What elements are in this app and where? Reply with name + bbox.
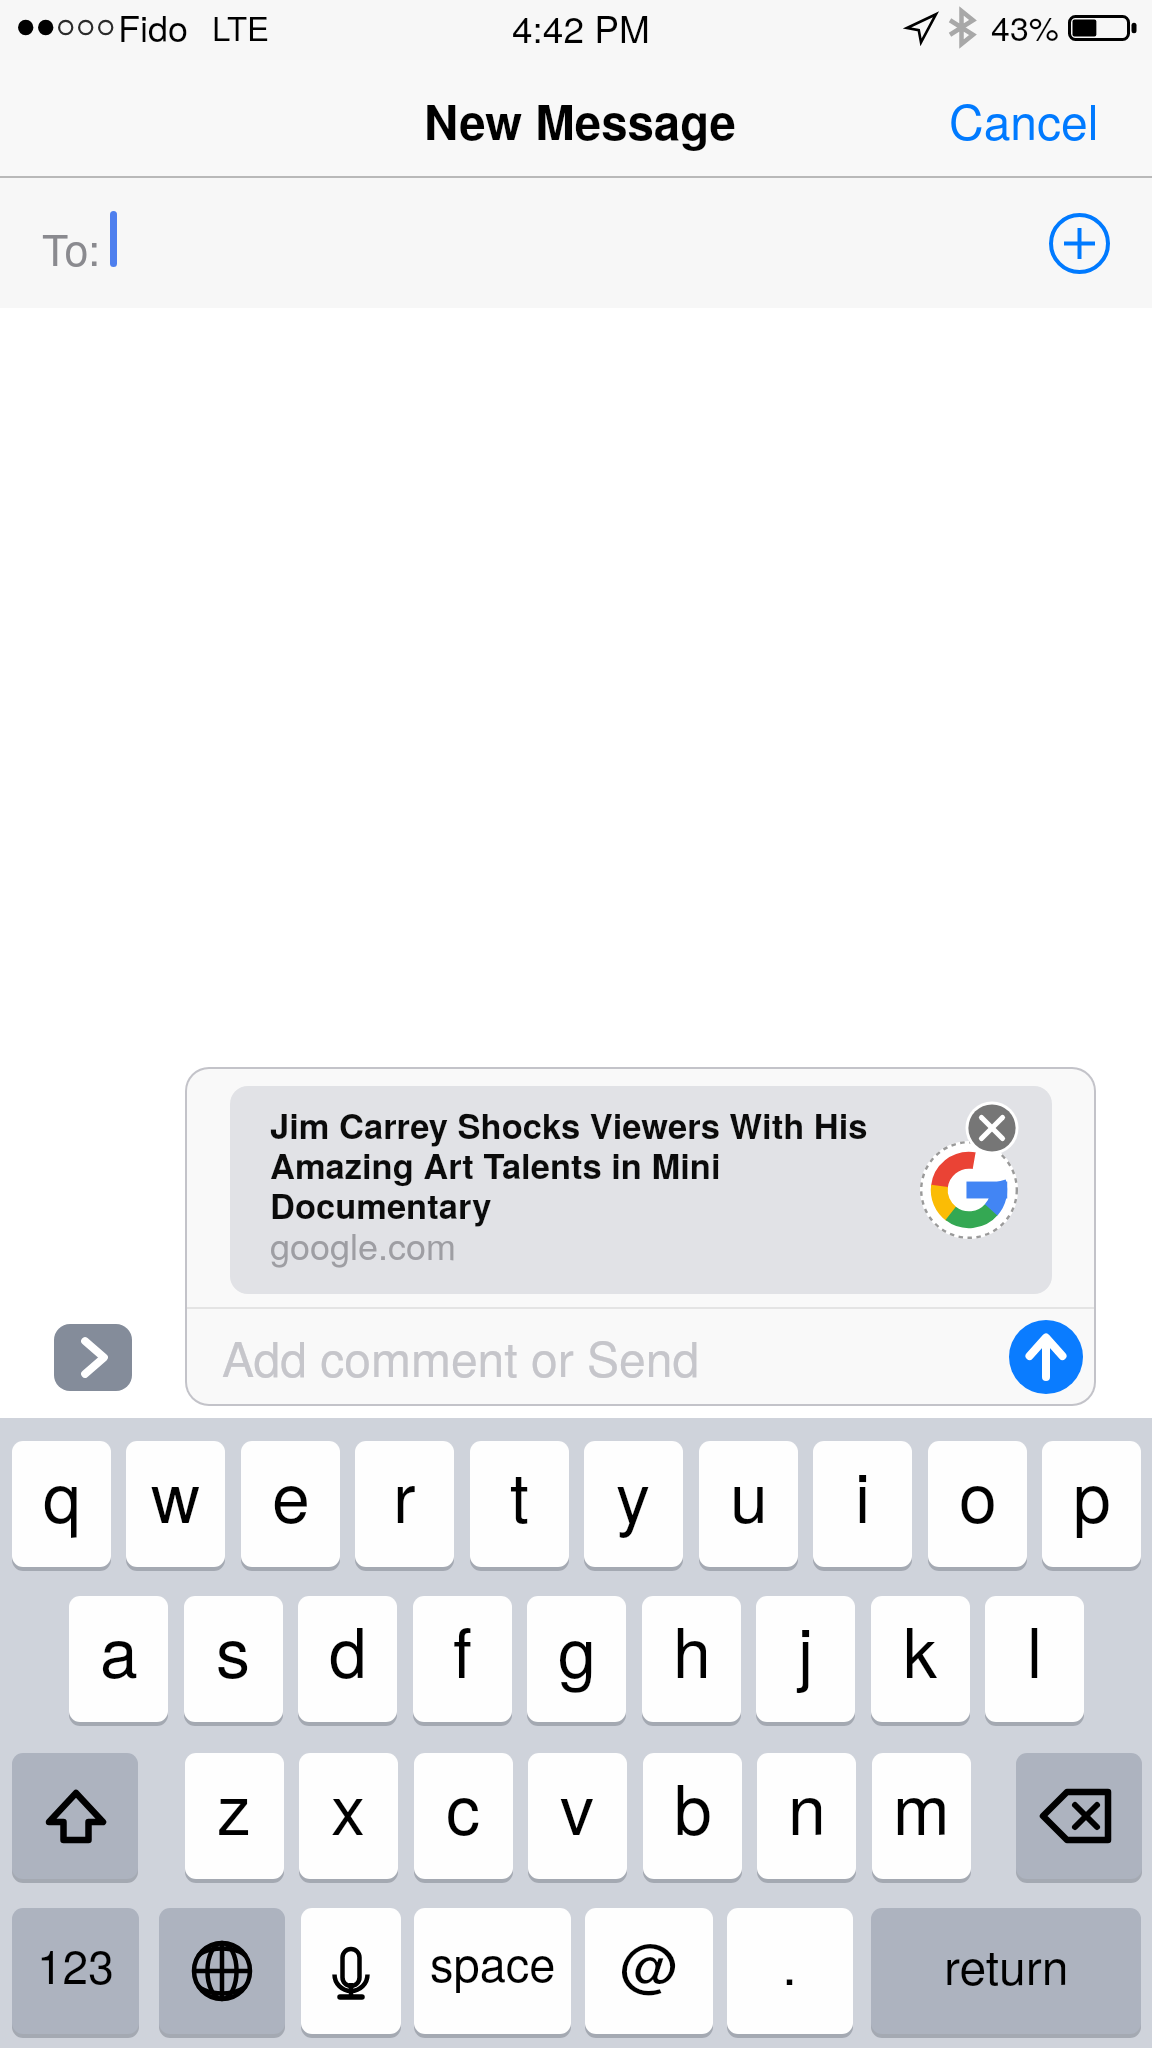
button[interactable]: t [470,1441,569,1567]
button[interactable]: Dictate [301,1908,401,2034]
staticText: Cancel [949,85,1099,154]
staticText: google.com [270,1219,457,1271]
staticText: @ [620,1920,679,2003]
button[interactable]: c [414,1753,513,1879]
staticText: j [798,1600,814,1697]
button[interactable]: y [584,1441,683,1567]
button[interactable]: n [757,1753,856,1879]
button[interactable]: h [642,1596,741,1722]
staticText: . [782,1923,798,2000]
staticText: To: [42,217,101,279]
staticText: Fido [118,1,189,53]
button[interactable]: e [241,1441,340,1567]
staticText: New Message [424,87,736,155]
staticText: 43% [991,2,1060,51]
staticText: f [453,1600,472,1697]
button[interactable]: u [699,1441,798,1567]
staticText: r [393,1445,416,1542]
button[interactable]: k [871,1596,970,1722]
button[interactable]: i [813,1441,912,1567]
button[interactable]: Remove attachment [960,1096,1024,1160]
staticText: Jim Carrey Shocks Viewers With His [270,1100,868,1149]
staticText: x [331,1757,366,1854]
button[interactable]: Backspace [1016,1753,1142,1879]
staticText: Add comment or Send [222,1322,700,1391]
staticText: q [43,1445,81,1542]
staticText: d [329,1600,367,1697]
button[interactable]: r [355,1441,454,1567]
staticText: m [893,1757,950,1854]
staticText: g [558,1600,596,1697]
staticText: 4:42 PM [512,1,650,54]
button[interactable]: v [528,1753,627,1879]
button[interactable]: space [414,1908,571,2034]
button[interactable]: @ [585,1908,713,2034]
staticText: s [216,1600,251,1697]
button[interactable]: l [985,1596,1084,1722]
staticText: n [788,1757,826,1854]
button[interactable]: 123 [12,1908,139,2034]
staticText: return [944,1930,1069,1999]
button[interactable]: o [928,1441,1027,1567]
button[interactable]: d [298,1596,397,1722]
button[interactable]: Jim Carrey Shocks Viewers With His [230,1086,1052,1294]
button[interactable]: m [872,1753,971,1879]
button[interactable]: Show apps [54,1324,132,1391]
button[interactable]: Cancel [925,70,1123,168]
button[interactable]: w [126,1441,225,1567]
button[interactable]: Shift [12,1753,138,1879]
button[interactable]: Send [1009,1320,1083,1394]
staticText: h [673,1600,711,1697]
button[interactable]: s [184,1596,283,1722]
button[interactable]: a [69,1596,168,1722]
staticText: Amazing Art Talents in Mini [270,1140,721,1189]
button[interactable]: g [527,1596,626,1722]
staticText: y [616,1445,651,1542]
staticText: a [100,1600,138,1697]
button[interactable]: z [185,1753,284,1879]
staticText: l [1027,1600,1043,1697]
button[interactable]: return [871,1908,1141,2034]
staticText: v [560,1757,595,1854]
button[interactable]: Add contact [1034,198,1125,289]
button[interactable]: b [643,1753,742,1879]
button[interactable]: x [299,1753,398,1879]
staticText: Documentary [270,1180,492,1229]
button[interactable]: f [413,1596,512,1722]
button[interactable]: p [1042,1441,1141,1567]
staticText: z [217,1757,252,1854]
staticText: t [510,1445,529,1542]
button[interactable]: . [727,1908,853,2034]
staticText: 123 [37,1931,114,1997]
button[interactable]: q [12,1441,111,1567]
staticText: space [430,1928,556,1995]
button[interactable]: j [756,1596,855,1722]
staticText: u [730,1445,768,1542]
staticText: LTE [212,3,270,50]
staticText: i [855,1445,871,1542]
staticText: k [903,1600,938,1697]
staticText: e [272,1445,310,1542]
staticText: o [959,1445,997,1542]
staticText: b [674,1757,712,1854]
staticText: p [1073,1445,1111,1542]
staticText: c [446,1757,481,1854]
staticText: w [151,1445,201,1542]
button[interactable]: Switch keyboard [159,1908,285,2034]
